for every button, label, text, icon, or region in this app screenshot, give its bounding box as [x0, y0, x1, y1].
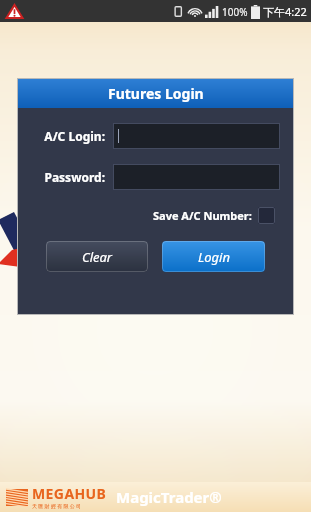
staticText: Login — [198, 248, 230, 266]
other: MegaHub logo — [6, 489, 28, 506]
staticText: MEGAHUB — [32, 484, 107, 503]
button[interactable]: Login — [162, 241, 265, 272]
button[interactable] — [114, 124, 279, 148]
button[interactable]: Save A/C Number: — [18, 207, 275, 224]
staticText: Password: — [44, 169, 105, 185]
staticText: A/C Login: — [44, 128, 105, 144]
staticText: 下午4:22 — [263, 4, 307, 19]
staticText: 100% — [222, 5, 248, 19]
staticText: 天 匯 財 經 有 限 公 司 — [32, 503, 82, 510]
staticText: Save A/C Number: — [153, 208, 252, 223]
button[interactable]: Clear — [46, 241, 148, 272]
staticText: Clear — [82, 248, 113, 266]
staticText: Futures Login — [108, 84, 204, 103]
staticText: MagicTrader® — [116, 487, 222, 507]
